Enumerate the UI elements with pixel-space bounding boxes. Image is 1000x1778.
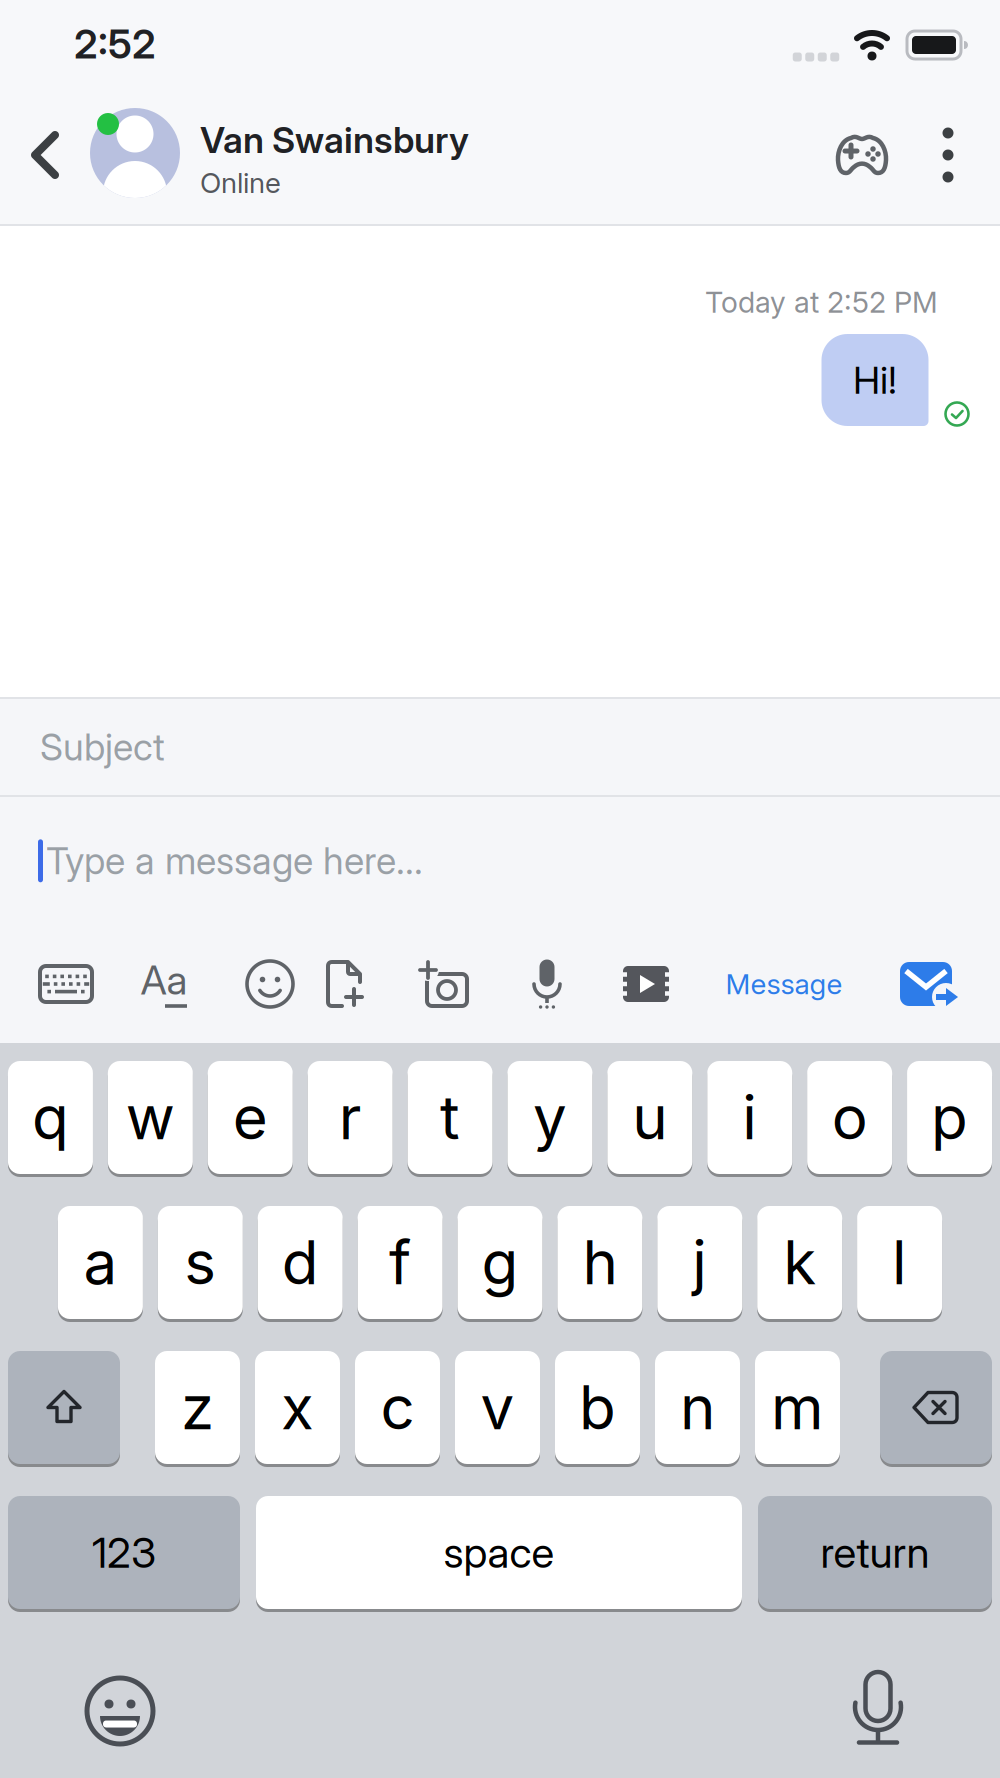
button[interactable]: t xyxy=(408,1059,493,1175)
button[interactable]: Message xyxy=(725,967,842,1000)
staticText: q xyxy=(32,1082,69,1153)
staticText: return xyxy=(820,1528,929,1577)
staticText: c xyxy=(380,1372,414,1443)
button[interactable]: j xyxy=(657,1204,742,1320)
button[interactable]: f xyxy=(358,1204,443,1320)
staticText: Today at 2:52 PM xyxy=(705,285,938,319)
button[interactable]: n xyxy=(655,1349,740,1465)
button[interactable]: s xyxy=(158,1204,243,1320)
button[interactable]: p xyxy=(907,1059,992,1175)
button[interactable]: z xyxy=(155,1349,240,1465)
button[interactable]: space xyxy=(256,1494,742,1610)
button[interactable]: g xyxy=(457,1204,542,1320)
button[interactable]: Voice message xyxy=(529,958,565,1010)
button[interactable]: Emoji keyboard xyxy=(85,1676,155,1746)
button[interactable]: Send xyxy=(901,963,957,1007)
staticText: Subject xyxy=(40,725,165,769)
staticText: a xyxy=(83,1227,117,1298)
staticText: d xyxy=(282,1227,319,1298)
button[interactable]: k xyxy=(757,1204,842,1320)
staticText: Aa xyxy=(140,956,187,1004)
button[interactable]: o xyxy=(807,1059,892,1175)
button[interactable]: Emoji xyxy=(247,961,293,1007)
staticText: Type a message here... xyxy=(46,839,423,883)
button[interactable]: h xyxy=(557,1204,642,1320)
button[interactable]: Shift xyxy=(8,1349,120,1465)
staticText: Online xyxy=(200,166,281,199)
button[interactable]: e xyxy=(208,1059,293,1175)
staticText: z xyxy=(181,1372,214,1443)
button[interactable]: x xyxy=(255,1349,340,1465)
staticText: j xyxy=(692,1227,707,1298)
button[interactable]: q xyxy=(8,1059,93,1175)
button[interactable]: 123 xyxy=(8,1494,240,1610)
staticText: y xyxy=(533,1082,567,1153)
staticText: s xyxy=(184,1227,216,1298)
button[interactable]: r xyxy=(308,1059,393,1175)
button[interactable]: u xyxy=(607,1059,692,1175)
button[interactable]: Keyboard xyxy=(38,962,94,1006)
staticText: p xyxy=(931,1082,968,1153)
button[interactable]: v xyxy=(455,1349,540,1465)
button[interactable]: w xyxy=(108,1059,193,1175)
staticText: h xyxy=(582,1227,617,1298)
staticText: e xyxy=(233,1082,268,1153)
button[interactable]: Take photo xyxy=(419,962,467,1006)
button[interactable]: More options xyxy=(928,127,968,183)
button[interactable]: Subject xyxy=(0,699,1000,795)
button[interactable]: Type a message here xyxy=(0,839,1000,883)
staticText: x xyxy=(281,1372,314,1443)
staticText: Hi! xyxy=(853,358,897,402)
button[interactable]: y xyxy=(507,1059,592,1175)
staticText: n xyxy=(680,1372,715,1443)
staticText: Van Swainsbury xyxy=(200,119,469,161)
button[interactable]: Attach file xyxy=(324,960,364,1008)
button[interactable]: Dictation xyxy=(853,1670,903,1748)
button[interactable]: i xyxy=(707,1059,792,1175)
button[interactable]: Delete xyxy=(880,1349,992,1465)
staticText: o xyxy=(832,1082,868,1153)
staticText: i xyxy=(742,1082,757,1153)
staticText: 2:52 xyxy=(74,20,156,68)
button[interactable]: Video message xyxy=(623,965,669,1003)
staticText: v xyxy=(480,1372,514,1443)
staticText: g xyxy=(481,1227,518,1298)
staticText: space xyxy=(443,1528,554,1577)
staticText: 123 xyxy=(92,1528,156,1577)
staticText: u xyxy=(632,1082,667,1153)
staticText: r xyxy=(339,1082,362,1153)
staticText: Message xyxy=(725,967,842,1000)
staticText: w xyxy=(126,1082,175,1153)
button[interactable]: b xyxy=(555,1349,640,1465)
button[interactable]: l xyxy=(857,1204,942,1320)
button[interactable]: Play a game xyxy=(834,127,890,183)
staticText: k xyxy=(783,1227,816,1298)
button[interactable]: d xyxy=(258,1204,343,1320)
button[interactable]: return xyxy=(758,1494,992,1610)
button[interactable]: Back xyxy=(27,127,67,183)
staticText: t xyxy=(440,1082,460,1153)
button[interactable]: m xyxy=(755,1349,840,1465)
staticText: m xyxy=(771,1372,824,1443)
staticText: l xyxy=(892,1227,907,1298)
button[interactable]: a xyxy=(58,1204,143,1320)
button[interactable]: Text format xyxy=(134,958,198,1010)
button[interactable]: c xyxy=(355,1349,440,1465)
staticText: f xyxy=(389,1227,411,1298)
staticText: b xyxy=(579,1372,616,1443)
